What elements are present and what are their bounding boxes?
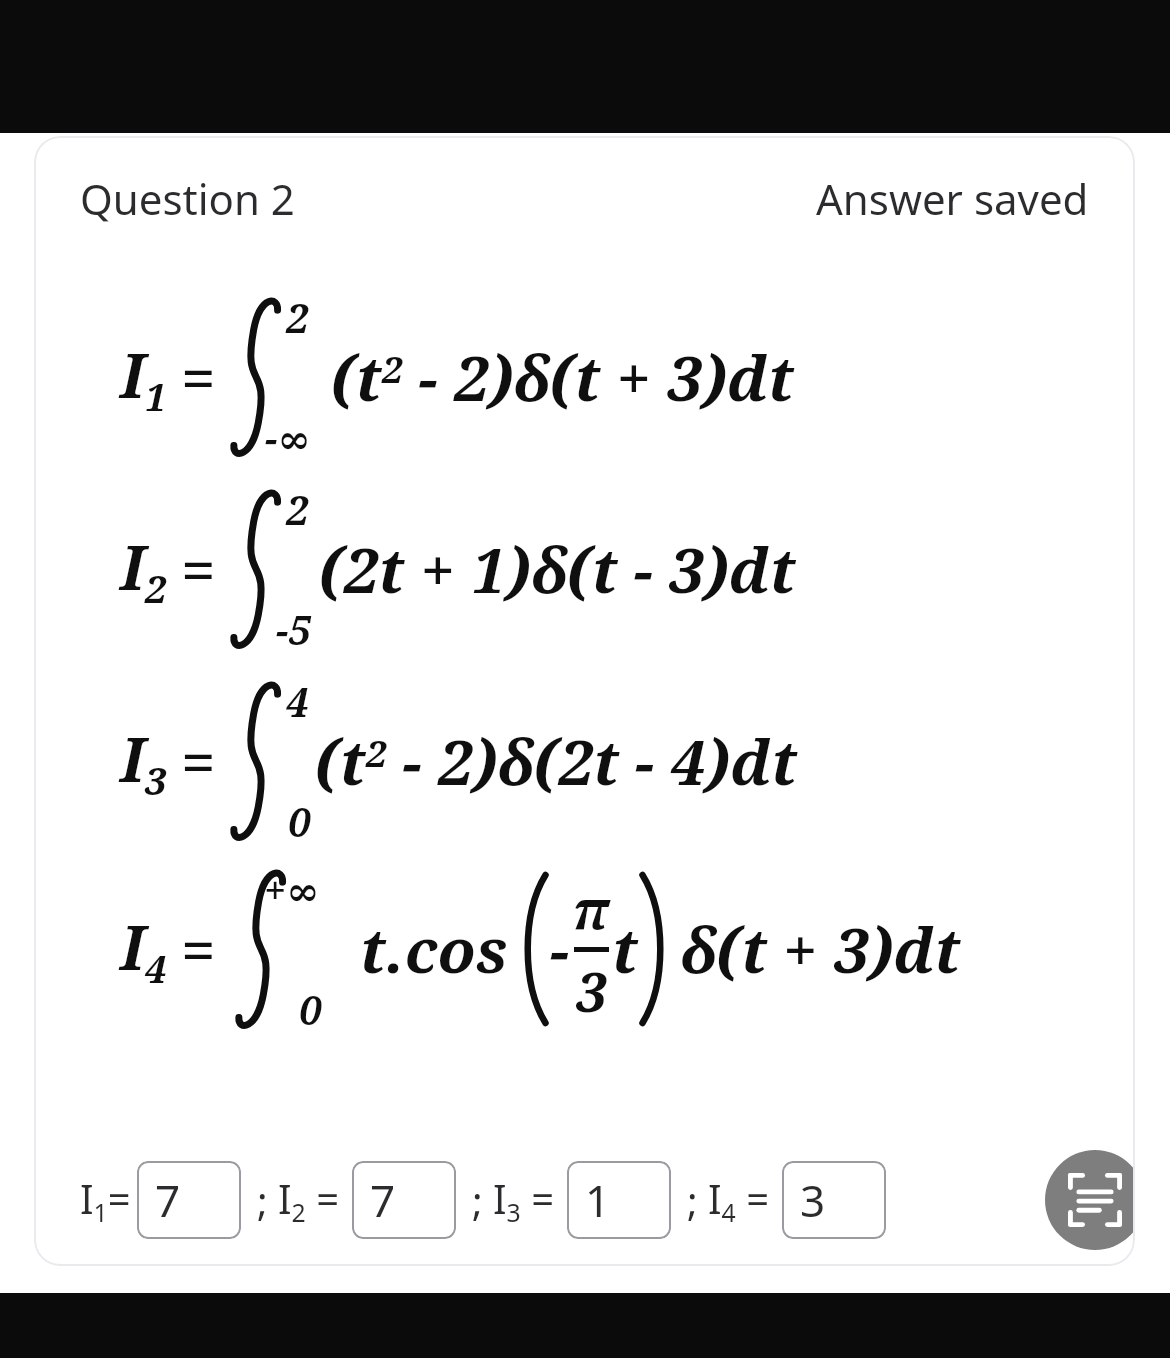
staticText: = [181, 719, 216, 803]
staticText: 7 [155, 1170, 181, 1230]
staticText: I3 = [493, 1171, 555, 1229]
staticText: t.cos [360, 907, 508, 991]
staticText: I3 [120, 716, 167, 806]
staticText: 2 [286, 482, 309, 536]
staticText: I2 = [278, 1171, 340, 1229]
staticText: 3 [800, 1170, 826, 1230]
staticText: π [573, 871, 609, 945]
staticText: I1 [120, 332, 167, 422]
staticText: I1= [80, 1171, 131, 1229]
staticText: ; [257, 1173, 268, 1227]
staticText: I4 = [708, 1171, 770, 1229]
staticText: 7 [370, 1170, 396, 1230]
button[interactable]: 1 [567, 1161, 671, 1239]
staticText: −5 [276, 602, 311, 656]
staticText: 1 [585, 1170, 611, 1230]
staticText: (t2 − 2)δ(2t − 4)dt [315, 719, 798, 803]
staticText: Answer saved [816, 170, 1089, 227]
staticText: 3 [576, 954, 607, 1028]
button[interactable]: Scan text [1045, 1150, 1135, 1250]
staticText: − [550, 907, 570, 991]
staticText: = [181, 527, 216, 611]
staticText: (t2 − 2)δ(t + 3)dt [331, 335, 794, 419]
staticText: 0 [288, 794, 311, 848]
staticText: = [181, 335, 216, 419]
button[interactable]: 7 [352, 1161, 456, 1239]
staticText: = [181, 907, 216, 991]
staticText: I4 [120, 904, 167, 994]
staticText: (2t + 1)δ(t − 3)dt [319, 527, 796, 611]
staticText: ; [472, 1173, 483, 1227]
staticText: −∞ [265, 410, 311, 464]
staticText: I2 [120, 524, 167, 614]
staticText: t [612, 907, 638, 991]
staticText: Question 2 [80, 170, 295, 227]
staticText: 0 [299, 982, 322, 1036]
button[interactable]: Question 2 [80, 170, 295, 227]
button[interactable]: 3 [782, 1161, 886, 1239]
staticText: δ(t + 3)dt [680, 907, 961, 991]
staticText: +∞ [264, 862, 320, 916]
staticText: ; [687, 1173, 698, 1227]
staticText: 4 [286, 674, 309, 728]
staticText: 2 [286, 290, 309, 344]
button[interactable]: 7 [137, 1161, 241, 1239]
